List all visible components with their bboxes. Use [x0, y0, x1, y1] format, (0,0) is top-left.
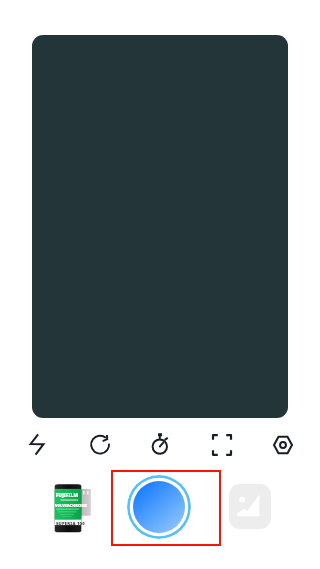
button[interactable]: Flash [23, 431, 51, 459]
button[interactable]: Aspect ratio [208, 431, 236, 459]
button[interactable]: Switch camera [85, 431, 113, 459]
button[interactable]: Shutter [127, 475, 191, 539]
button[interactable]: Settings [269, 431, 297, 459]
staticText: FUJIFILM [56, 492, 79, 498]
staticText: SUPERIA 100 [56, 521, 85, 527]
button[interactable]: Viewfinder [32, 35, 288, 418]
button[interactable]: Film roll [53, 482, 92, 533]
staticText: VELVIACHROME [55, 503, 88, 508]
button[interactable]: Gallery [229, 484, 271, 529]
button[interactable]: Timer [146, 431, 174, 459]
